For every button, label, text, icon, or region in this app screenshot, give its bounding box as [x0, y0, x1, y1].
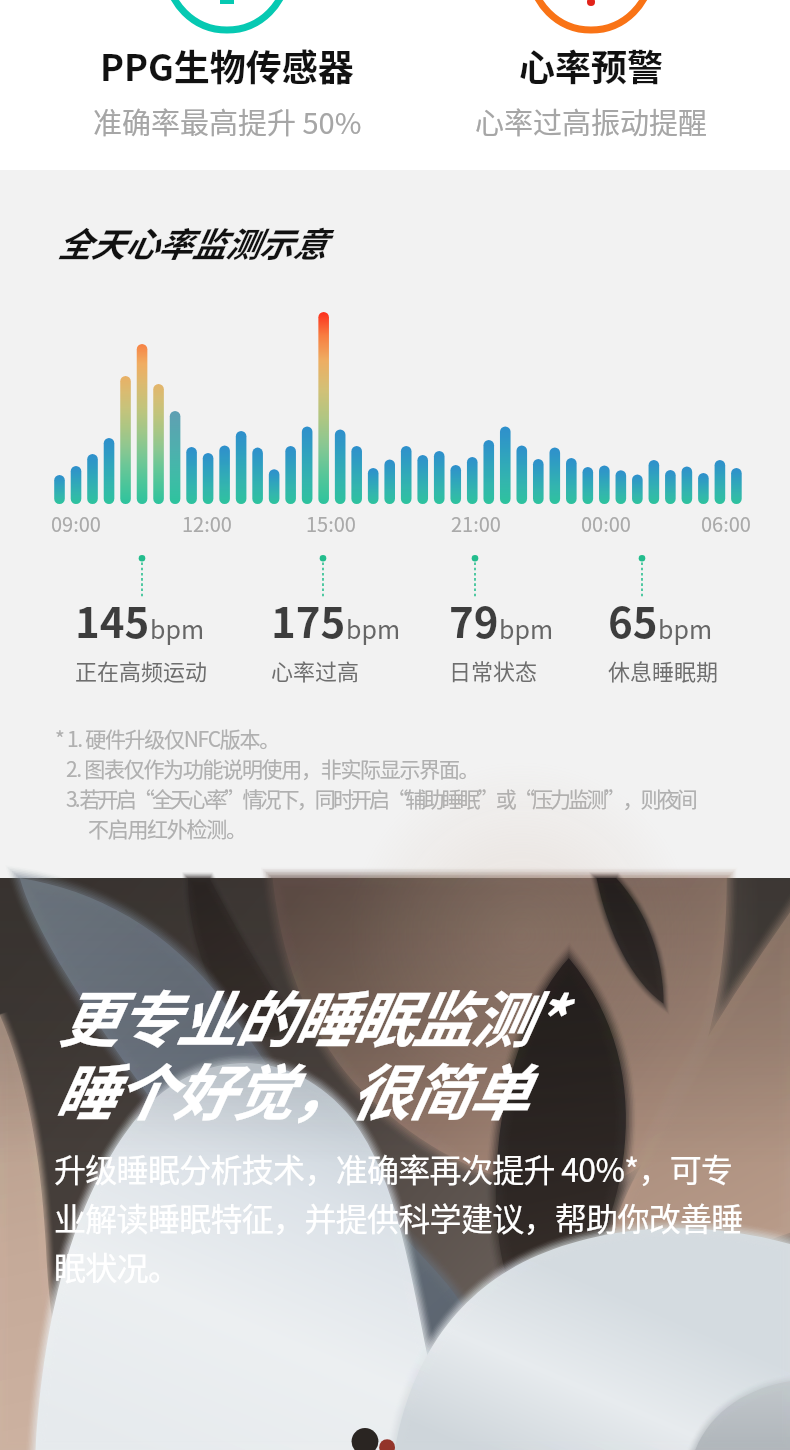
- staticText: 睡个好觉，很简单: [54, 1044, 527, 1132]
- staticText: 79: [449, 589, 499, 650]
- staticText: 12:00: [182, 509, 232, 538]
- staticText: 不启用红外检测。: [88, 813, 246, 843]
- staticText: PPG生物传感器: [100, 39, 354, 91]
- staticText: 09:00: [51, 509, 101, 538]
- staticText: 休息睡眠期: [608, 654, 719, 686]
- staticText: bpm: [499, 610, 554, 646]
- staticText: 00:00: [581, 509, 631, 538]
- staticText: bpm: [658, 610, 713, 646]
- staticText: * 1. 硬件升级仅NFC版本。: [55, 723, 279, 753]
- staticText: 145: [75, 589, 150, 650]
- staticText: 升级睡眠分析技术，准确率再次提升 40%*，可专 业解读睡眠特征，并提供科学建议…: [54, 1145, 743, 1289]
- staticText: 15:00: [306, 509, 356, 538]
- staticText: 心率预警: [519, 39, 664, 91]
- staticText: 心率过高: [271, 654, 360, 686]
- staticText: 正在高频运动: [75, 654, 208, 686]
- staticText: bpm: [346, 610, 401, 646]
- staticText: 3. 若开启“全天心率”情况下，同时开启“辅助睡眠”或“压力监测”，则夜间: [66, 783, 695, 813]
- staticText: 日常状态: [449, 654, 538, 686]
- staticText: 准确率最高提升 50%: [93, 100, 362, 142]
- staticText: 06:00: [701, 509, 751, 538]
- staticText: 更专业的睡眠监测*: [57, 971, 558, 1059]
- staticText: 65: [608, 589, 658, 650]
- staticText: 全天心率监测示意: [57, 218, 326, 267]
- staticText: bpm: [150, 610, 205, 646]
- staticText: 心率过高振动提醒: [475, 100, 708, 142]
- staticText: 2. 图表仅作为功能说明使用，非实际显示界面。: [66, 753, 479, 783]
- staticText: 21:00: [451, 509, 501, 538]
- staticText: 175: [271, 589, 346, 650]
